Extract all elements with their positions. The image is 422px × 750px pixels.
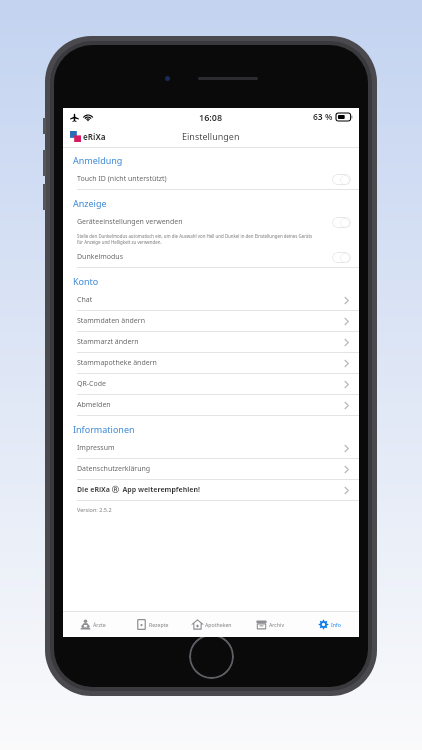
staticText: Abmelden: [77, 400, 344, 410]
button[interactable]: Geräteeinstellungen verwenden: [63, 212, 359, 232]
staticText: Chat: [77, 295, 344, 305]
button[interactable]: Schalter aus: [332, 252, 351, 263]
button[interactable]: Dunkelmodus: [63, 247, 359, 268]
button[interactable]: Abmelden: [63, 395, 359, 416]
button[interactable]: Info: [300, 612, 359, 637]
staticText: Archiv: [269, 621, 285, 628]
button[interactable]: Chat: [63, 290, 359, 311]
button[interactable]: Stammarzt ändern: [63, 332, 359, 353]
button[interactable]: Impressum: [63, 438, 359, 459]
button[interactable]: QR-Code: [63, 374, 359, 395]
staticText: Einstellungen: [182, 130, 240, 142]
staticText: QR-Code: [77, 379, 344, 389]
staticText: Datenschutzerklärung: [77, 464, 344, 474]
staticText: 16:08: [199, 111, 223, 123]
staticText: Die eRiXa Ⓡ App weiterempfehlen!: [77, 485, 344, 495]
staticText: Geräteeinstellungen verwenden: [77, 217, 332, 227]
staticText: Stelle den Dunkelmodus automatisch ein, …: [77, 233, 313, 239]
staticText: Konto: [73, 275, 99, 287]
staticText: Rezepte: [149, 621, 169, 628]
staticText: Info: [331, 621, 341, 628]
button[interactable]: Die eRiXa Ⓡ App weiterempfehlen!: [63, 480, 359, 501]
staticText: Stammarzt ändern: [77, 337, 344, 347]
staticText: Informationen: [73, 423, 135, 435]
button[interactable]: Stammdaten ändern: [63, 311, 359, 332]
button[interactable]: Schalter aus: [332, 217, 351, 228]
staticText: für Anzeige und Helligkeit zu verwenden.: [77, 239, 162, 245]
button[interactable]: Datenschutzerklärung: [63, 459, 359, 480]
staticText: Anmeldung: [73, 154, 123, 166]
button[interactable]: Archiv: [241, 612, 300, 637]
staticText: Touch ID (nicht unterstützt): [77, 174, 332, 184]
staticText: Stammdaten ändern: [77, 316, 344, 326]
button[interactable]: eRiXa Logo: [70, 131, 106, 142]
staticText: Impressum: [77, 443, 344, 453]
staticText: Anzeige: [73, 197, 107, 209]
staticText: Version: 2.5.2: [77, 506, 112, 513]
button[interactable]: Ärzte: [63, 612, 123, 637]
button[interactable]: Stammapotheke ändern: [63, 353, 359, 374]
button[interactable]: Schalter aus: [332, 174, 351, 185]
staticText: Dunkelmodus: [77, 252, 332, 262]
staticText: Stammapotheke ändern: [77, 358, 344, 368]
button[interactable]: Apotheken: [182, 612, 241, 637]
button[interactable]: Touch ID (nicht unterstützt): [63, 169, 359, 190]
staticText: Ärzte: [93, 621, 106, 628]
staticText: Apotheken: [205, 621, 232, 628]
staticText: 63 %: [313, 111, 333, 123]
button[interactable]: Rezepte: [123, 612, 182, 637]
staticText: eRiXa: [83, 131, 106, 142]
